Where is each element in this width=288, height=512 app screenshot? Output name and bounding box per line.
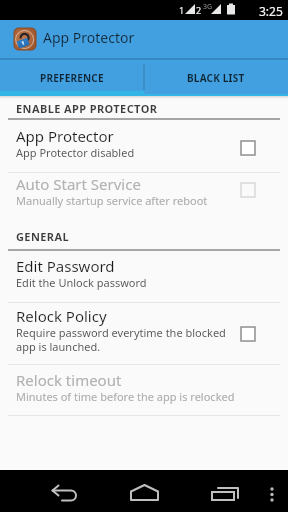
staticText: Edit the Unlock password xyxy=(16,275,147,290)
staticText: Relock Policy xyxy=(16,306,107,326)
button[interactable] xyxy=(0,251,288,302)
staticText: App Protector disabled xyxy=(16,145,135,160)
staticText: BLACK LIST xyxy=(187,71,245,85)
staticText: App Protector xyxy=(16,126,114,146)
button[interactable] xyxy=(241,141,255,155)
staticText: Manually startup service after reboot xyxy=(16,193,208,208)
staticText: ENABLE APP PROTECTOR xyxy=(16,101,158,116)
staticText: Relock timeout xyxy=(16,370,122,390)
button[interactable] xyxy=(0,121,288,172)
button[interactable] xyxy=(258,470,286,512)
staticText: Edit Password xyxy=(16,256,115,276)
button[interactable] xyxy=(40,470,96,512)
button[interactable] xyxy=(116,470,172,512)
staticText: GENERAL xyxy=(16,229,70,244)
staticText: Require password everytime the blocked a… xyxy=(16,325,226,354)
staticText: 2 xyxy=(196,4,202,16)
staticText: 1 xyxy=(179,4,185,16)
staticText: Auto Start Service xyxy=(16,174,141,194)
staticText: 3G xyxy=(203,2,213,12)
staticText: PREFERENCE xyxy=(40,71,104,85)
button[interactable] xyxy=(241,327,255,341)
button[interactable]: PREFERENCE xyxy=(0,60,144,96)
staticText: 3:25 xyxy=(259,3,283,19)
button[interactable] xyxy=(196,470,252,512)
button[interactable]: BLACK LIST xyxy=(144,60,288,96)
button[interactable] xyxy=(0,303,288,364)
staticText: App Protector xyxy=(43,28,135,47)
staticText: Minutes of time before the app is relock… xyxy=(16,389,235,404)
